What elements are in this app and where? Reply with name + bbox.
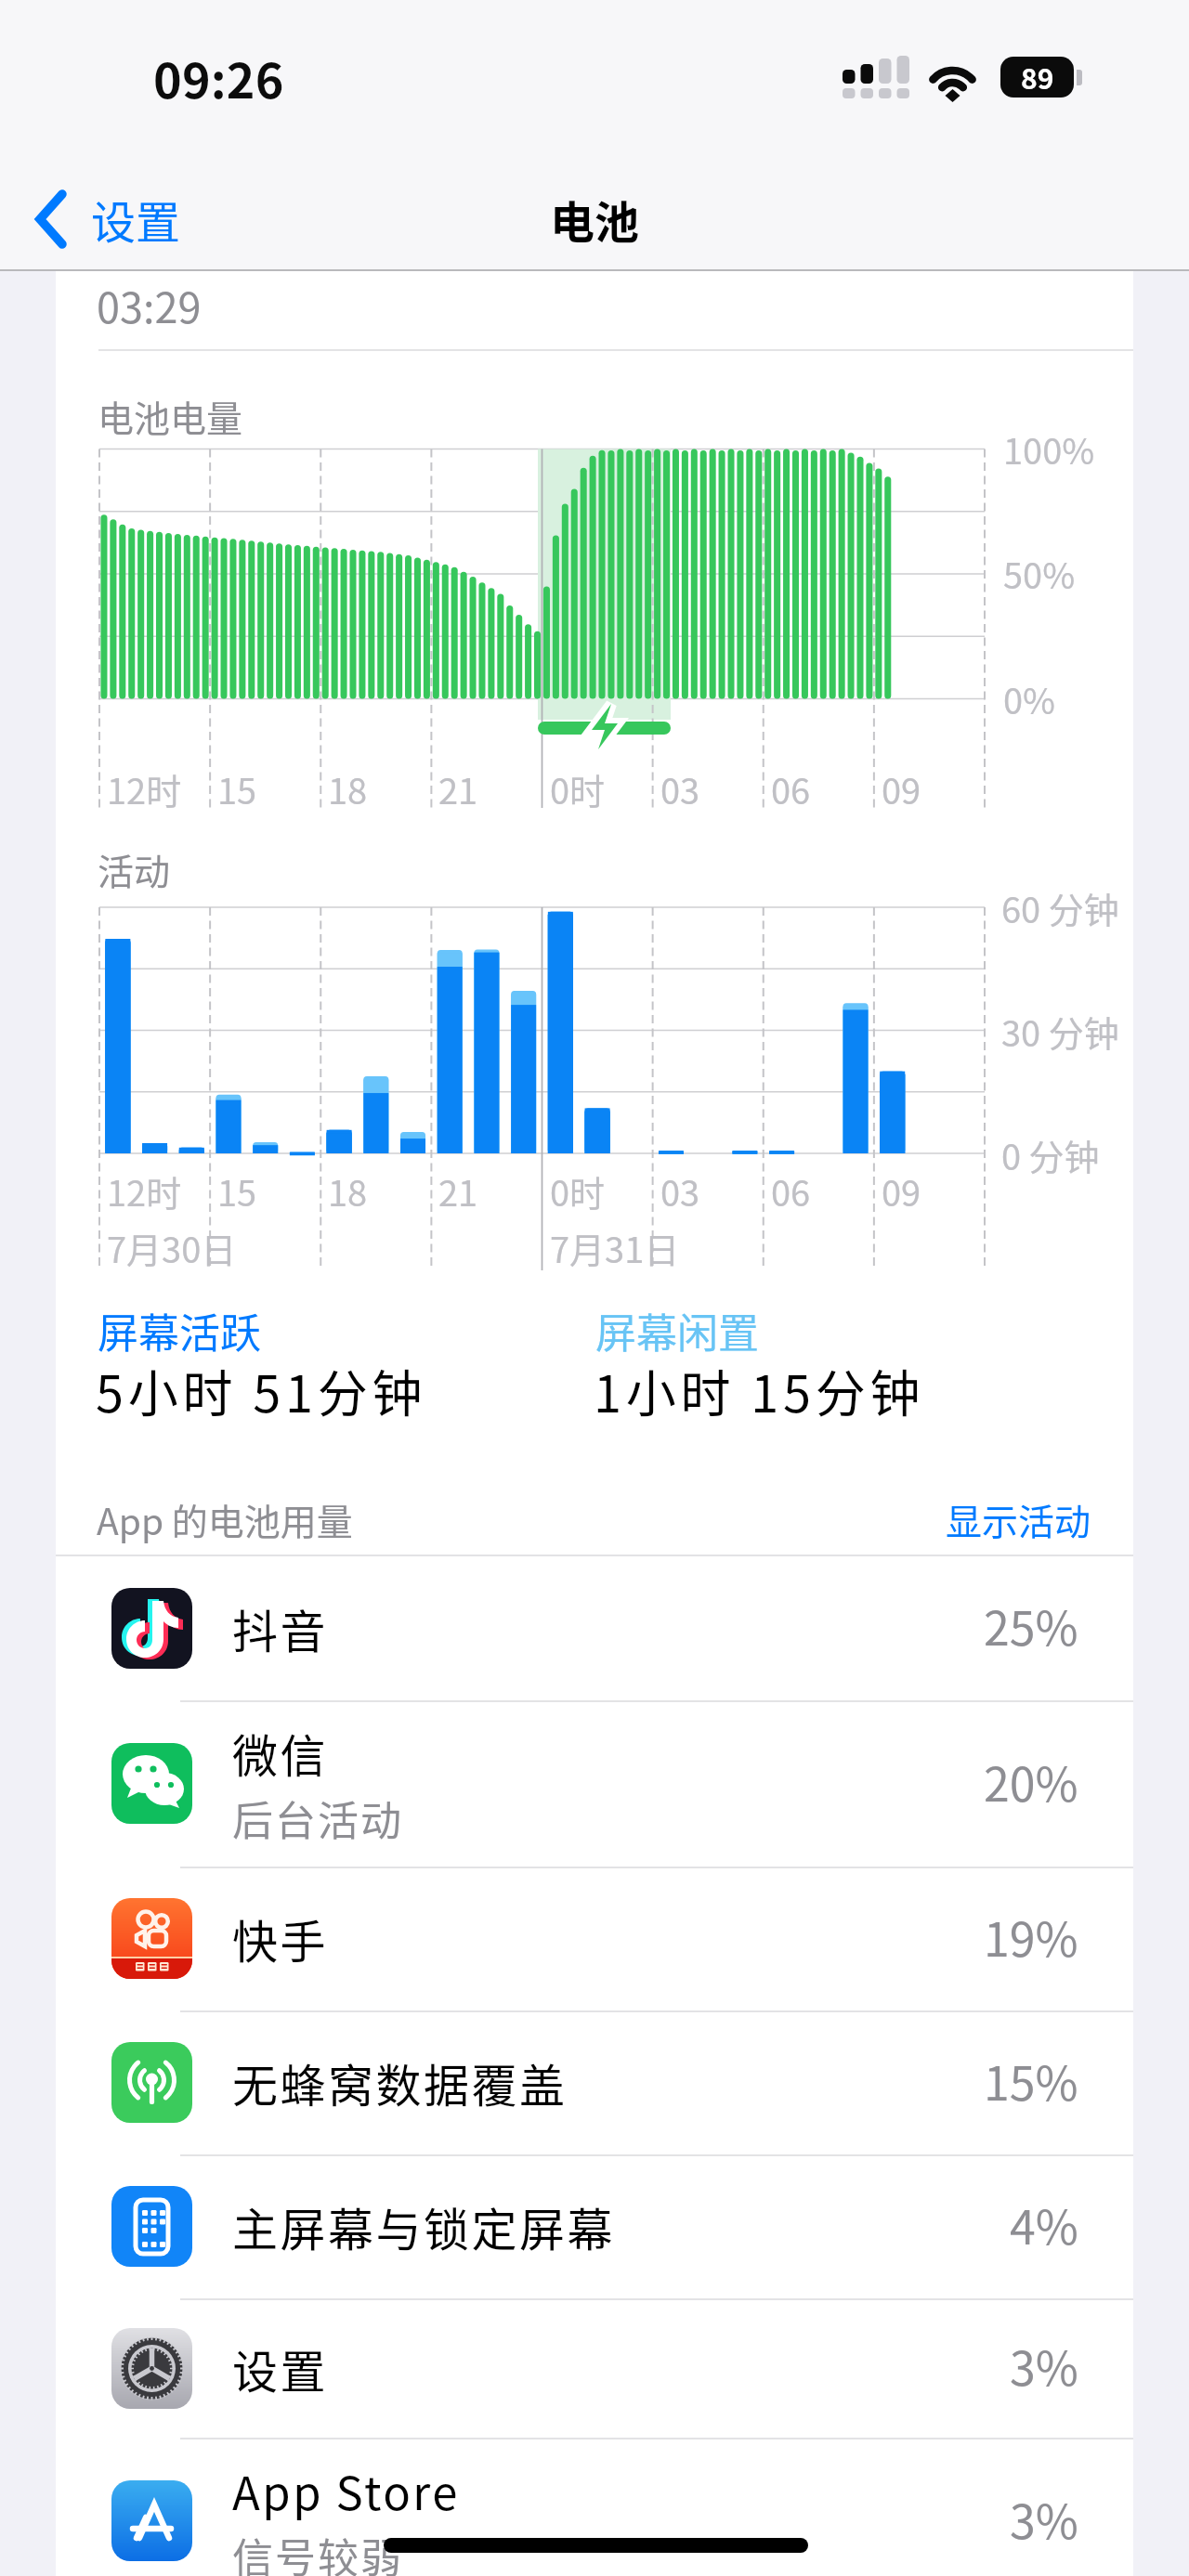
staticText: 12时 — [107, 763, 182, 814]
staticText: 1小时 15分钟 — [594, 1354, 925, 1426]
staticText: 5小时 51分钟 — [96, 1354, 427, 1426]
staticText: 03 — [660, 763, 700, 814]
staticText: 显示活动 — [946, 1493, 1091, 1545]
staticText: 18 — [328, 1165, 368, 1216]
staticText: 09 — [882, 1165, 921, 1216]
button[interactable]: 显示活动 — [931, 1478, 1106, 1560]
staticText: 21 — [438, 1165, 478, 1216]
staticText: 15 — [217, 763, 257, 814]
staticText: 活动 — [98, 843, 171, 895]
staticText: 0% — [1003, 673, 1056, 724]
staticText: 7月31日 — [550, 1222, 680, 1273]
staticText: 09:26 — [153, 43, 284, 112]
staticText: 25% — [984, 1592, 1078, 1659]
button[interactable]: 设置 — [32, 167, 364, 271]
staticText: 3% — [1010, 2332, 1078, 2399]
button[interactable]: 设置 — [56, 2298, 1133, 2438]
staticText: 屏幕闲置 — [595, 1301, 759, 1360]
staticText: 设置 — [232, 2335, 329, 2401]
staticText: 03 — [660, 1165, 700, 1216]
button[interactable]: 微信 — [56, 1700, 1133, 1867]
button[interactable]: 无蜂窝数据覆盖 — [56, 2010, 1133, 2154]
staticText: 后台活动 — [232, 1789, 403, 1848]
staticText: 03:29 — [97, 275, 202, 335]
staticText: 微信 — [232, 1720, 329, 1786]
staticText: 0时 — [550, 763, 606, 814]
staticText: 0时 — [550, 1165, 606, 1216]
staticText: 50% — [1003, 548, 1076, 599]
staticText: 18 — [328, 763, 368, 814]
button[interactable]: 抖音 — [56, 1555, 1133, 1700]
staticText: App 的电池用量 — [97, 1493, 353, 1545]
staticText: 0 分钟 — [1001, 1129, 1100, 1180]
staticText: 无蜂窝数据覆盖 — [232, 2049, 568, 2115]
button[interactable]: App Store — [56, 2438, 1133, 2576]
staticText: 06 — [771, 763, 811, 814]
staticText: 21 — [438, 763, 478, 814]
staticText: 15 — [217, 1165, 257, 1216]
staticText: 抖音 — [232, 1595, 329, 1661]
staticText: App Store — [232, 2457, 460, 2523]
staticText: 4% — [1010, 2191, 1078, 2257]
staticText: 19% — [984, 1903, 1078, 1970]
staticText: 快手 — [232, 1906, 329, 1971]
staticText: 12时 — [107, 1165, 182, 1216]
staticText: 屏幕活跃 — [98, 1301, 261, 1360]
staticText: 20% — [984, 1748, 1078, 1815]
staticText: 30 分钟 — [1001, 1006, 1119, 1057]
staticText: 信号较弱 — [232, 2526, 403, 2576]
staticText: 89 — [1021, 57, 1054, 97]
staticText: 15% — [984, 2047, 1078, 2114]
staticText: 7月30日 — [107, 1222, 237, 1273]
staticText: 电池 — [550, 187, 640, 252]
button[interactable]: 快手 — [56, 1867, 1133, 2010]
staticText: 09 — [882, 763, 921, 814]
staticText: 主屏幕与锁定屏幕 — [232, 2193, 616, 2259]
staticText: 3% — [1010, 2485, 1078, 2552]
staticText: 设置 — [91, 187, 181, 252]
staticText: 06 — [771, 1165, 811, 1216]
staticText: 60 分钟 — [1001, 882, 1119, 933]
button[interactable]: 主屏幕与锁定屏幕 — [56, 2154, 1133, 2298]
staticText: 电池电量 — [98, 390, 243, 442]
staticText: 100% — [1003, 423, 1095, 475]
